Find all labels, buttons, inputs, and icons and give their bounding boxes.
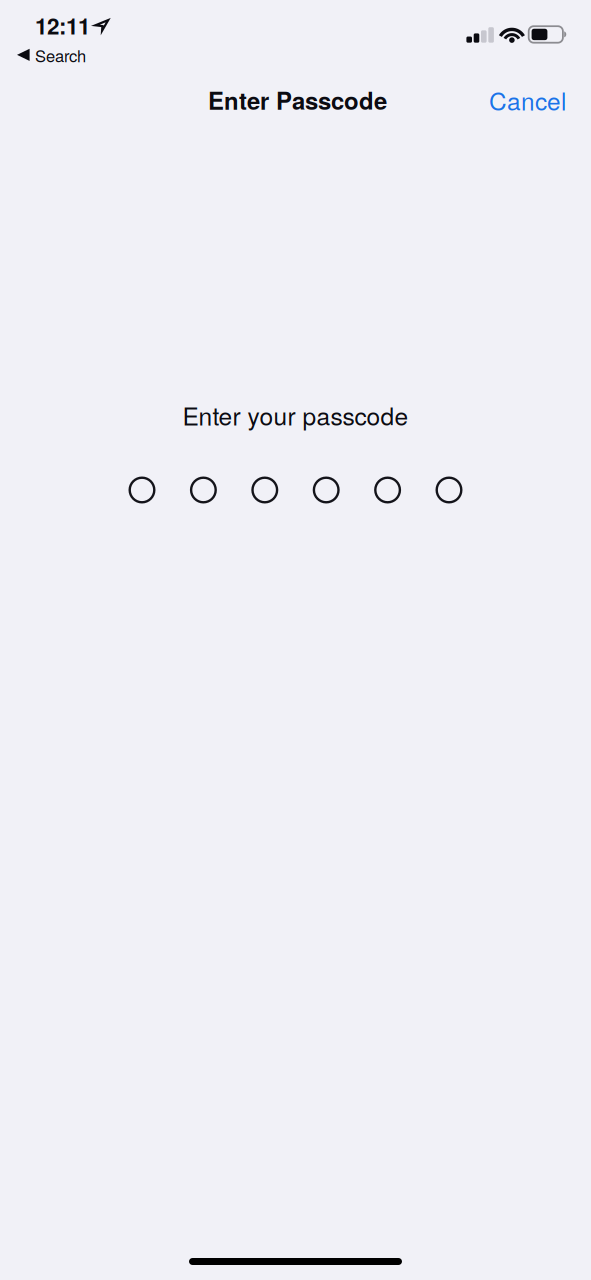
- button[interactable]: Search: [0, 47, 591, 63]
- staticText: Enter your passcode: [182, 397, 408, 432]
- staticText: Cancel: [489, 82, 566, 117]
- staticText: Search: [35, 43, 86, 67]
- staticText: 12:11: [35, 9, 90, 41]
- staticText: Enter Passcode: [208, 83, 387, 117]
- button[interactable]: Cancel: [480, 74, 575, 125]
